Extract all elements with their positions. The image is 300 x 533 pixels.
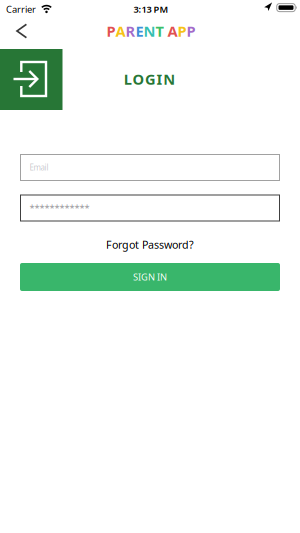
staticText: E <box>135 21 143 41</box>
staticText: Email <box>29 162 48 173</box>
staticText: P <box>106 21 115 41</box>
textField[interactable]: Email <box>20 154 280 181</box>
staticText: T <box>155 21 163 41</box>
staticText: 3:13 PM <box>133 3 168 15</box>
secureTextField[interactable]: •••••••••••• <box>20 194 280 221</box>
staticText: N <box>143 21 155 41</box>
staticText: A <box>167 21 177 41</box>
staticText: P <box>177 21 186 41</box>
button[interactable]: SIGN IN <box>20 263 280 291</box>
staticText: R <box>125 21 135 41</box>
button[interactable]: Forgot Password? <box>102 233 198 256</box>
staticText: Carrier <box>6 3 36 15</box>
staticText: LOGIN <box>124 69 175 89</box>
staticText: P <box>186 21 195 41</box>
staticText: SIGN IN <box>133 271 167 283</box>
staticText: ************ <box>29 202 89 214</box>
staticText: Forgot Password? <box>106 237 194 252</box>
staticText: A <box>115 21 125 41</box>
staticText <box>163 21 167 41</box>
button[interactable]: Back <box>8 15 35 46</box>
